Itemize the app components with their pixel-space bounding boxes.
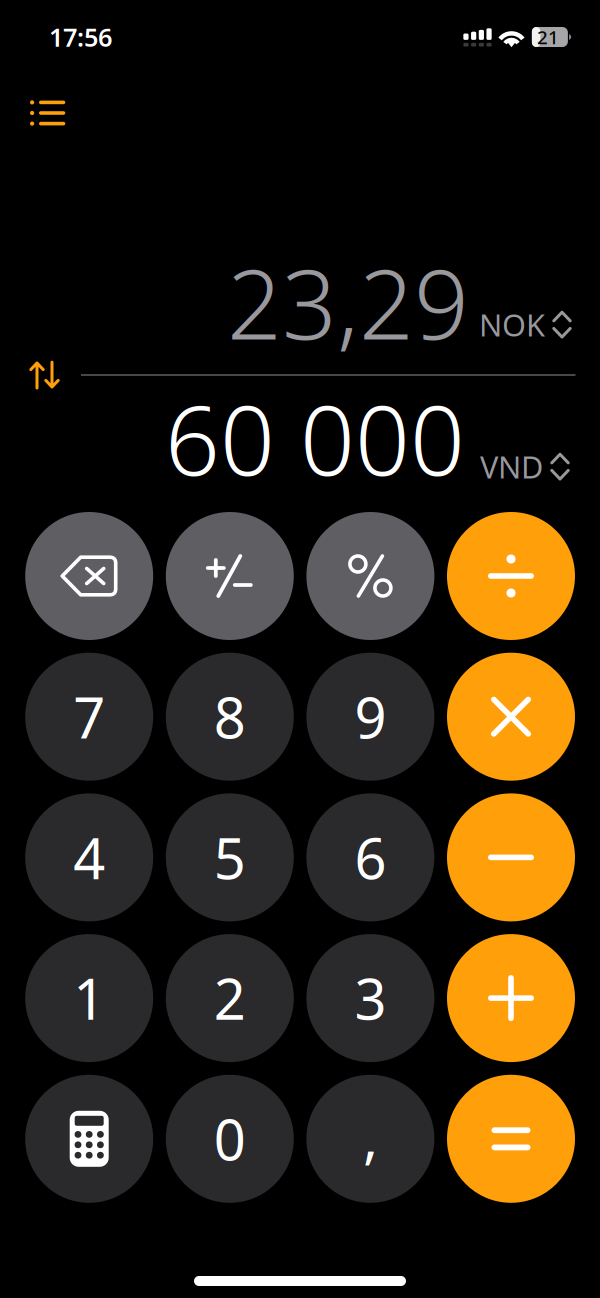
staticText: 1 bbox=[73, 961, 105, 1035]
button[interactable]: Equals bbox=[447, 1075, 575, 1203]
button[interactable]: 6 bbox=[306, 793, 434, 921]
staticText: 60 000 bbox=[165, 374, 465, 502]
button[interactable]: NOK bbox=[469, 304, 574, 366]
button[interactable]: 4 bbox=[25, 793, 153, 921]
button[interactable]: 9 bbox=[306, 653, 434, 781]
staticText: 6 bbox=[354, 820, 386, 895]
button[interactable]: VND bbox=[465, 446, 572, 502]
button[interactable]: Add bbox=[447, 934, 575, 1062]
button[interactable]: Subtract bbox=[447, 793, 575, 921]
staticText: , bbox=[363, 1100, 378, 1174]
button[interactable]: Percent bbox=[306, 512, 434, 640]
staticText: 9 bbox=[354, 679, 386, 754]
button[interactable]: 2 bbox=[166, 934, 294, 1062]
staticText: 3 bbox=[354, 961, 386, 1035]
staticText: 5 bbox=[214, 820, 246, 895]
button[interactable]: Delete bbox=[25, 512, 153, 640]
button[interactable]: Swap currencies bbox=[17, 351, 73, 399]
staticText: 17:56 bbox=[49, 20, 112, 54]
button[interactable]: Toggle sign bbox=[166, 512, 294, 640]
staticText: 7 bbox=[73, 679, 105, 754]
staticText: VND bbox=[480, 446, 543, 487]
button[interactable]: 8 bbox=[166, 653, 294, 781]
button[interactable]: Calculator bbox=[25, 1075, 153, 1203]
button[interactable]: Currency list bbox=[18, 87, 77, 139]
button[interactable]: Multiply bbox=[447, 653, 575, 781]
staticText: 21 bbox=[537, 25, 559, 49]
staticText: 23,29 bbox=[227, 238, 469, 366]
button[interactable]: 1 bbox=[25, 934, 153, 1062]
button[interactable]: , bbox=[306, 1075, 434, 1203]
staticText: 0 bbox=[214, 1102, 246, 1176]
button[interactable]: Divide bbox=[447, 512, 575, 640]
staticText: 4 bbox=[73, 820, 105, 895]
button[interactable]: 0 bbox=[166, 1075, 294, 1203]
staticText: 8 bbox=[214, 679, 246, 754]
staticText: NOK bbox=[479, 304, 545, 345]
button[interactable]: 7 bbox=[25, 653, 153, 781]
button[interactable]: 5 bbox=[166, 793, 294, 921]
button[interactable]: 3 bbox=[306, 934, 434, 1062]
staticText: 2 bbox=[214, 961, 246, 1035]
